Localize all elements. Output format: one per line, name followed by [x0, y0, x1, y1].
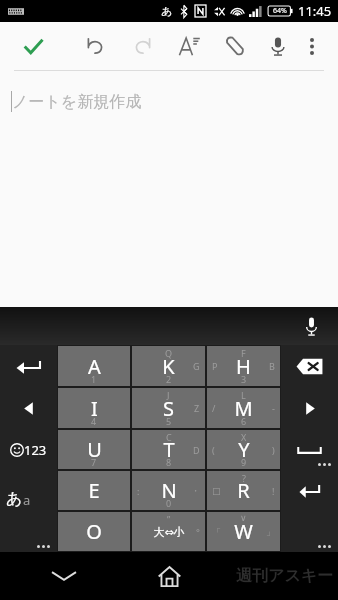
button[interactable]: Symbols and numbers	[0, 429, 57, 470]
staticText: ”	[167, 513, 171, 525]
staticText: 3	[241, 373, 247, 385]
staticText: E	[88, 477, 100, 504]
staticText: -	[272, 402, 275, 414]
staticText: J	[167, 389, 170, 401]
button[interactable]: Cursor left	[0, 387, 57, 429]
button[interactable]: 大⇔小	[132, 512, 205, 551]
staticText: K	[162, 353, 175, 380]
button[interactable]: Cursor right	[281, 387, 338, 429]
staticText: A	[88, 353, 101, 380]
staticText: P	[212, 360, 218, 372]
staticText: 0	[166, 497, 172, 509]
staticText: □	[212, 486, 221, 496]
staticText: U	[87, 436, 102, 463]
staticText: 6	[241, 415, 247, 427]
staticText: O	[86, 518, 102, 545]
staticText: 7	[91, 456, 97, 468]
button[interactable]: Undo	[76, 27, 114, 65]
button[interactable]: Redo	[124, 27, 162, 65]
staticText: G	[193, 360, 200, 372]
staticText: °	[196, 526, 200, 538]
staticText: Q	[165, 347, 173, 359]
button[interactable]: R	[207, 471, 280, 510]
button[interactable]: Attach	[216, 27, 254, 65]
staticText: 「	[212, 526, 221, 537]
button[interactable]: Voice typing	[296, 311, 326, 341]
staticText: 8	[166, 456, 172, 468]
staticText: 123	[24, 441, 47, 459]
button[interactable]: E	[58, 471, 130, 510]
button[interactable]: U	[58, 430, 130, 469]
button[interactable]: Save	[14, 27, 52, 65]
button[interactable]: Enter	[281, 470, 338, 511]
button[interactable]: N	[132, 471, 205, 510]
button[interactable]: I	[58, 388, 130, 428]
staticText: B	[269, 360, 275, 372]
staticText: F	[241, 347, 246, 359]
staticText: 2	[166, 373, 172, 385]
staticText: a	[23, 491, 31, 509]
button[interactable]: S	[132, 388, 205, 428]
button[interactable]: Voice input	[259, 27, 297, 65]
staticText: 5	[166, 415, 172, 427]
staticText: M	[234, 395, 253, 422]
staticText: T	[163, 436, 175, 463]
staticText: ∨	[240, 513, 247, 523]
button[interactable]: M	[207, 388, 280, 428]
button[interactable]: O	[58, 512, 130, 551]
staticText: ノートを新規作成	[12, 92, 142, 112]
staticText: C	[166, 431, 172, 443]
staticText: 大⇔小	[153, 525, 185, 539]
button[interactable]: Delete	[281, 345, 338, 387]
staticText: Y	[238, 436, 250, 463]
button[interactable]: Home	[147, 554, 191, 598]
staticText: S	[163, 395, 174, 422]
staticText: L	[241, 389, 246, 401]
staticText: (	[212, 444, 215, 456]
button[interactable]: Format text	[170, 27, 208, 65]
staticText: 」	[266, 526, 275, 537]
staticText: あ	[6, 489, 23, 509]
staticText: R	[237, 477, 250, 504]
button[interactable]: T	[132, 430, 205, 469]
button[interactable]: Hide keyboard	[42, 554, 86, 598]
staticText: N	[161, 477, 177, 504]
staticText: H	[236, 353, 251, 380]
staticText: 週刊アスキー	[236, 566, 334, 586]
staticText: !	[272, 485, 275, 497]
staticText: I	[91, 395, 98, 422]
staticText: ・	[191, 485, 200, 496]
staticText: D	[193, 444, 200, 456]
button[interactable]: Undo	[0, 345, 57, 387]
button[interactable]: K	[132, 346, 205, 386]
staticText: 11:45	[298, 2, 332, 20]
staticText: あ	[161, 4, 173, 18]
staticText: 1	[91, 373, 97, 385]
button[interactable]: A	[58, 346, 130, 386]
staticText: Z	[194, 402, 200, 414]
staticText: /	[212, 402, 216, 414]
button[interactable]: Space	[281, 429, 338, 470]
button[interactable]: Y	[207, 430, 280, 469]
staticText: 4	[91, 415, 97, 427]
staticText: W	[234, 518, 253, 545]
staticText: )	[272, 444, 275, 456]
staticText: 64%	[273, 6, 287, 16]
button[interactable]: More options	[294, 28, 330, 64]
button[interactable]: Switch input mode	[0, 470, 57, 511]
button[interactable]: Input options	[0, 511, 57, 552]
staticText: ?	[242, 472, 246, 484]
staticText: :	[137, 485, 140, 497]
button[interactable]: W	[207, 512, 280, 551]
staticText: 9	[241, 456, 247, 468]
staticText: X	[241, 431, 247, 443]
button[interactable]: Keyboard options	[281, 511, 338, 552]
button[interactable]: H	[207, 346, 280, 386]
